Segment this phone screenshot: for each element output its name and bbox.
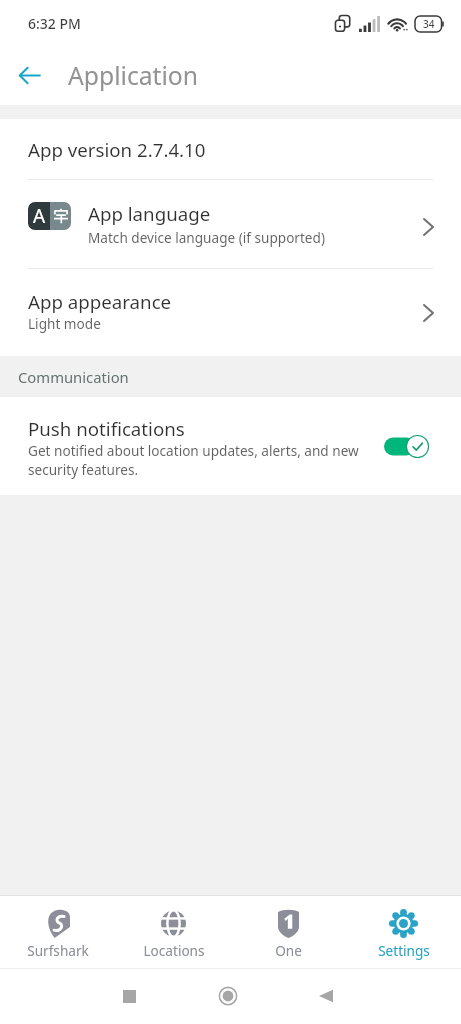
button[interactable]: One bbox=[231, 895, 346, 968]
staticText: Application bbox=[68, 59, 199, 93]
button[interactable]: Home bbox=[208, 976, 248, 1016]
staticText: Communication bbox=[18, 367, 129, 387]
button[interactable]: Surfshark bbox=[0, 895, 116, 968]
button[interactable]: App appearance bbox=[0, 269, 461, 356]
button[interactable]: A bbox=[0, 180, 461, 268]
staticText: Locations bbox=[143, 941, 205, 960]
button[interactable]: Settings bbox=[346, 895, 461, 968]
staticText: One bbox=[275, 941, 302, 960]
staticText: Light mode bbox=[28, 314, 101, 333]
staticText: 6:32 PM bbox=[28, 14, 81, 33]
staticText: Get notified about location updates, ale… bbox=[28, 441, 366, 479]
button[interactable]: Locations bbox=[116, 895, 231, 968]
staticText: Match device language (if supported) bbox=[88, 228, 325, 247]
staticText: Surfshark bbox=[27, 941, 89, 960]
button[interactable]: Recents bbox=[109, 976, 149, 1016]
button[interactable]: Back bbox=[0, 46, 58, 105]
button[interactable]: Push notifications bbox=[0, 397, 461, 495]
button[interactable]: Push notifications toggle bbox=[380, 426, 432, 466]
staticText: Settings bbox=[378, 941, 430, 960]
staticText: 34 bbox=[423, 17, 435, 31]
staticText: App version 2.7.4.10 bbox=[28, 137, 206, 162]
button[interactable]: Back bbox=[306, 976, 346, 1016]
staticText: Push notifications bbox=[28, 416, 185, 441]
staticText: A bbox=[33, 203, 46, 229]
button[interactable]: App version 2.7.4.10 bbox=[0, 119, 461, 179]
staticText: App language bbox=[88, 201, 211, 226]
staticText: App appearance bbox=[28, 289, 172, 314]
